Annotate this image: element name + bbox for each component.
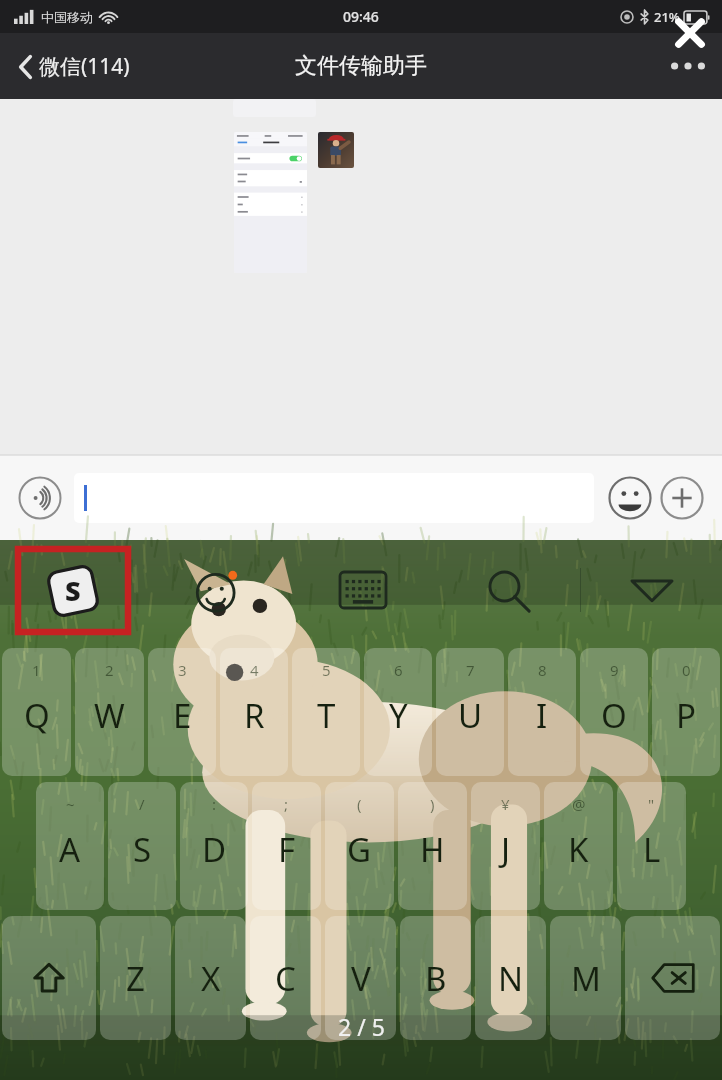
staticText: 微信(114): [39, 52, 130, 81]
button[interactable]: Emoji panel: [145, 540, 290, 640]
staticText: F: [278, 827, 296, 872]
button[interactable]: C: [250, 916, 321, 1040]
staticText: Z: [126, 956, 145, 1001]
staticText: ): [430, 794, 435, 814]
button[interactable]: V: [325, 916, 396, 1040]
staticText: U: [458, 693, 483, 738]
button[interactable]: More options: [656, 472, 708, 524]
staticText: O: [601, 693, 627, 738]
button[interactable]: ": [617, 782, 686, 910]
button[interactable]: 2: [75, 648, 144, 776]
button[interactable]: 3: [148, 648, 216, 776]
button[interactable]: Backspace: [625, 916, 720, 1040]
button[interactable]: Sogou keyboard settings: [0, 540, 145, 640]
button[interactable]: [74, 473, 594, 523]
button[interactable]: Avatar: [318, 132, 354, 168]
staticText: G: [347, 827, 372, 872]
staticText: X: [201, 956, 221, 1001]
button[interactable]: Z: [100, 916, 171, 1040]
button[interactable]: Close: [664, 7, 716, 59]
button[interactable]: Search: [435, 540, 580, 640]
button[interactable]: (: [325, 782, 394, 910]
button[interactable]: M: [550, 916, 621, 1040]
button[interactable]: Keyboard layout: [290, 540, 435, 640]
button[interactable]: [234, 132, 307, 273]
staticText: 文件传输助手: [295, 52, 427, 80]
staticText: :: [212, 794, 217, 814]
button[interactable]: ): [398, 782, 467, 910]
staticText: A: [59, 827, 81, 872]
button[interactable]: ¥: [471, 782, 540, 910]
staticText: I: [536, 693, 548, 738]
button[interactable]: Shift: [2, 916, 96, 1040]
staticText: E: [173, 693, 192, 738]
staticText: V: [351, 956, 371, 1001]
button[interactable]: X: [175, 916, 246, 1040]
button[interactable]: 6: [364, 648, 432, 776]
staticText: 5: [322, 660, 331, 680]
staticText: 中国移动: [41, 9, 93, 25]
staticText: 9: [610, 660, 619, 680]
staticText: 8: [538, 660, 547, 680]
staticText: 7: [466, 660, 475, 680]
button[interactable]: 8: [508, 648, 576, 776]
staticText: /: [139, 794, 145, 814]
staticText: 2: [105, 660, 114, 680]
staticText: S: [133, 827, 152, 872]
staticText: 4: [250, 660, 259, 680]
button[interactable]: 9: [580, 648, 648, 776]
staticText: 6: [394, 660, 403, 680]
staticText: M: [571, 956, 601, 1001]
staticText: Y: [389, 693, 408, 738]
staticText: L: [643, 827, 661, 872]
staticText: ": [648, 794, 655, 814]
staticText: 21%: [654, 8, 680, 26]
staticText: K: [568, 827, 589, 872]
staticText: N: [498, 956, 524, 1001]
staticText: 0: [682, 660, 691, 680]
staticText: @: [572, 794, 586, 814]
button[interactable]: ~: [36, 782, 104, 910]
button[interactable]: @: [544, 782, 613, 910]
button[interactable]: 5: [292, 648, 360, 776]
staticText: C: [275, 956, 296, 1001]
button[interactable]: More: [668, 46, 708, 86]
staticText: J: [501, 827, 511, 872]
staticText: ¥: [501, 794, 510, 814]
staticText: ;: [284, 794, 289, 814]
button[interactable]: 1: [2, 648, 71, 776]
staticText: 1: [32, 660, 41, 680]
button[interactable]: B: [400, 916, 471, 1040]
staticText: P: [676, 693, 696, 738]
button[interactable]: Emoji: [604, 472, 656, 524]
button[interactable]: :: [180, 782, 248, 910]
staticText: 3: [178, 660, 187, 680]
button[interactable]: Hide keyboard: [581, 540, 722, 640]
button[interactable]: 微信(114): [12, 46, 136, 87]
staticText: ~: [66, 794, 75, 814]
staticText: 2 / 5: [338, 1011, 385, 1042]
button[interactable]: N: [475, 916, 546, 1040]
staticText: R: [244, 693, 265, 738]
staticText: 09:46: [343, 7, 379, 26]
staticText: Q: [24, 693, 50, 738]
staticText: H: [420, 827, 445, 872]
staticText: W: [94, 693, 125, 738]
staticText: D: [202, 827, 227, 872]
button[interactable]: 0: [652, 648, 720, 776]
staticText: T: [317, 693, 336, 738]
button[interactable]: 7: [436, 648, 504, 776]
staticText: S: [65, 572, 81, 609]
button[interactable]: Voice input: [14, 472, 66, 524]
button[interactable]: /: [108, 782, 176, 910]
staticText: (: [357, 794, 362, 814]
staticText: B: [425, 956, 447, 1001]
button[interactable]: ;: [252, 782, 321, 910]
button[interactable]: 4: [220, 648, 288, 776]
